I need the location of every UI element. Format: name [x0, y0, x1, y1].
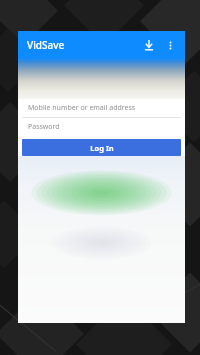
staticText: Mobile number or email address — [28, 103, 136, 113]
button[interactable]: Mobile number or email address — [22, 99, 181, 117]
staticText: VidSave — [27, 38, 65, 52]
staticText: Password — [28, 122, 60, 132]
button[interactable]: Download — [139, 35, 159, 55]
button[interactable]: More options — [161, 36, 179, 54]
button[interactable]: Log In — [22, 139, 181, 156]
button[interactable]: Password — [22, 118, 181, 136]
staticText: Log In — [90, 143, 114, 153]
